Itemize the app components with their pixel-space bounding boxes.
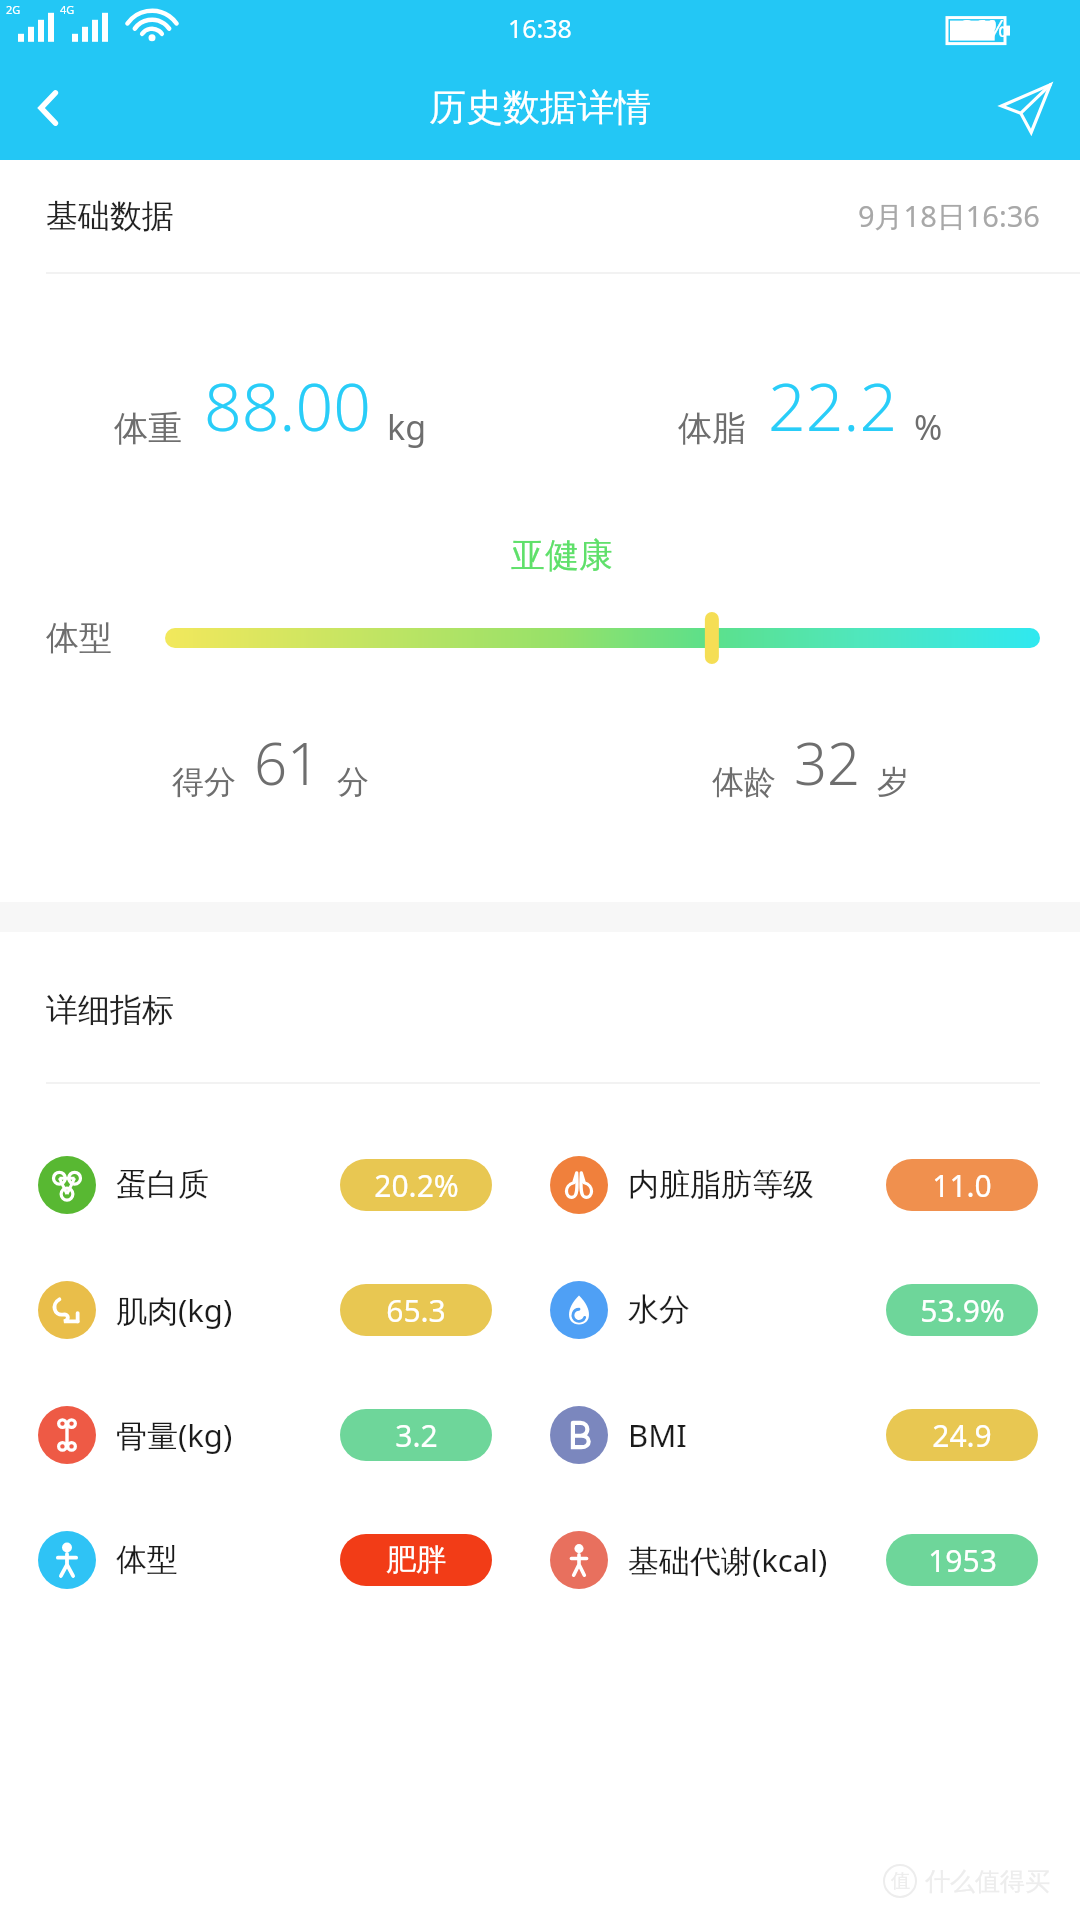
staticText: 24.9 (932, 1415, 992, 1456)
staticText: 1953 (928, 1540, 997, 1581)
staticText: 65.3 (386, 1290, 446, 1331)
button[interactable]: 水分 (540, 1247, 1080, 1372)
button[interactable]: Share (986, 68, 1066, 148)
button[interactable]: BMI (540, 1372, 1080, 1497)
staticText: 肌肉(kg) (116, 1289, 233, 1331)
staticText: 蛋白质 (116, 1165, 209, 1204)
staticText: 亚健康 (511, 534, 613, 577)
staticText: 什么值得买 (925, 1866, 1050, 1897)
button[interactable]: 骨量(kg) (0, 1372, 540, 1497)
staticText: 得分 (172, 762, 236, 802)
staticText: 体型 (46, 617, 112, 659)
staticText: 水分 (628, 1290, 690, 1329)
staticText: 体龄 (712, 762, 776, 802)
staticText: 2G (6, 2, 21, 17)
staticText: 基础代谢(kcal) (628, 1539, 828, 1581)
staticText: 肥胖 (386, 1541, 446, 1579)
staticText: 岁 (877, 762, 909, 802)
staticText: 86% (960, 11, 1008, 44)
staticText: 9月18日16:36 (858, 196, 1040, 236)
staticText: 体重 (114, 407, 182, 450)
staticText: 体型 (116, 1540, 178, 1579)
staticText: 分 (337, 762, 369, 802)
button[interactable]: Back (10, 69, 88, 147)
staticText: 16:38 (508, 11, 572, 45)
staticText: 32 (794, 723, 861, 802)
staticText: BMI (628, 1414, 687, 1456)
staticText: 骨量(kg) (116, 1414, 233, 1456)
staticText: 53.9% (920, 1290, 1005, 1331)
staticText: 20.2% (374, 1165, 459, 1206)
staticText: 历史数据详情 (429, 84, 651, 131)
staticText: 3.2 (395, 1415, 438, 1456)
staticText: 基础数据 (46, 196, 174, 236)
staticText: 体脂 (678, 407, 746, 450)
staticText: 61 (254, 723, 321, 802)
button[interactable]: 内脏脂肪等级 (540, 1122, 1080, 1247)
staticText: 值 (891, 1869, 910, 1893)
button[interactable]: 体型 (0, 1497, 540, 1622)
staticText: 4G (60, 2, 75, 17)
staticText: 详细指标 (46, 990, 174, 1030)
staticText: 22.2 (768, 360, 898, 450)
button[interactable]: 基础代谢(kcal) (540, 1497, 1080, 1622)
staticText: 内脏脂肪等级 (628, 1165, 814, 1204)
button[interactable]: 蛋白质 (0, 1122, 540, 1247)
staticText: % (914, 404, 943, 450)
staticText: 88.00 (204, 360, 371, 450)
staticText: 11.0 (932, 1165, 992, 1206)
button[interactable]: 肌肉(kg) (0, 1247, 540, 1372)
staticText: kg (387, 404, 427, 450)
